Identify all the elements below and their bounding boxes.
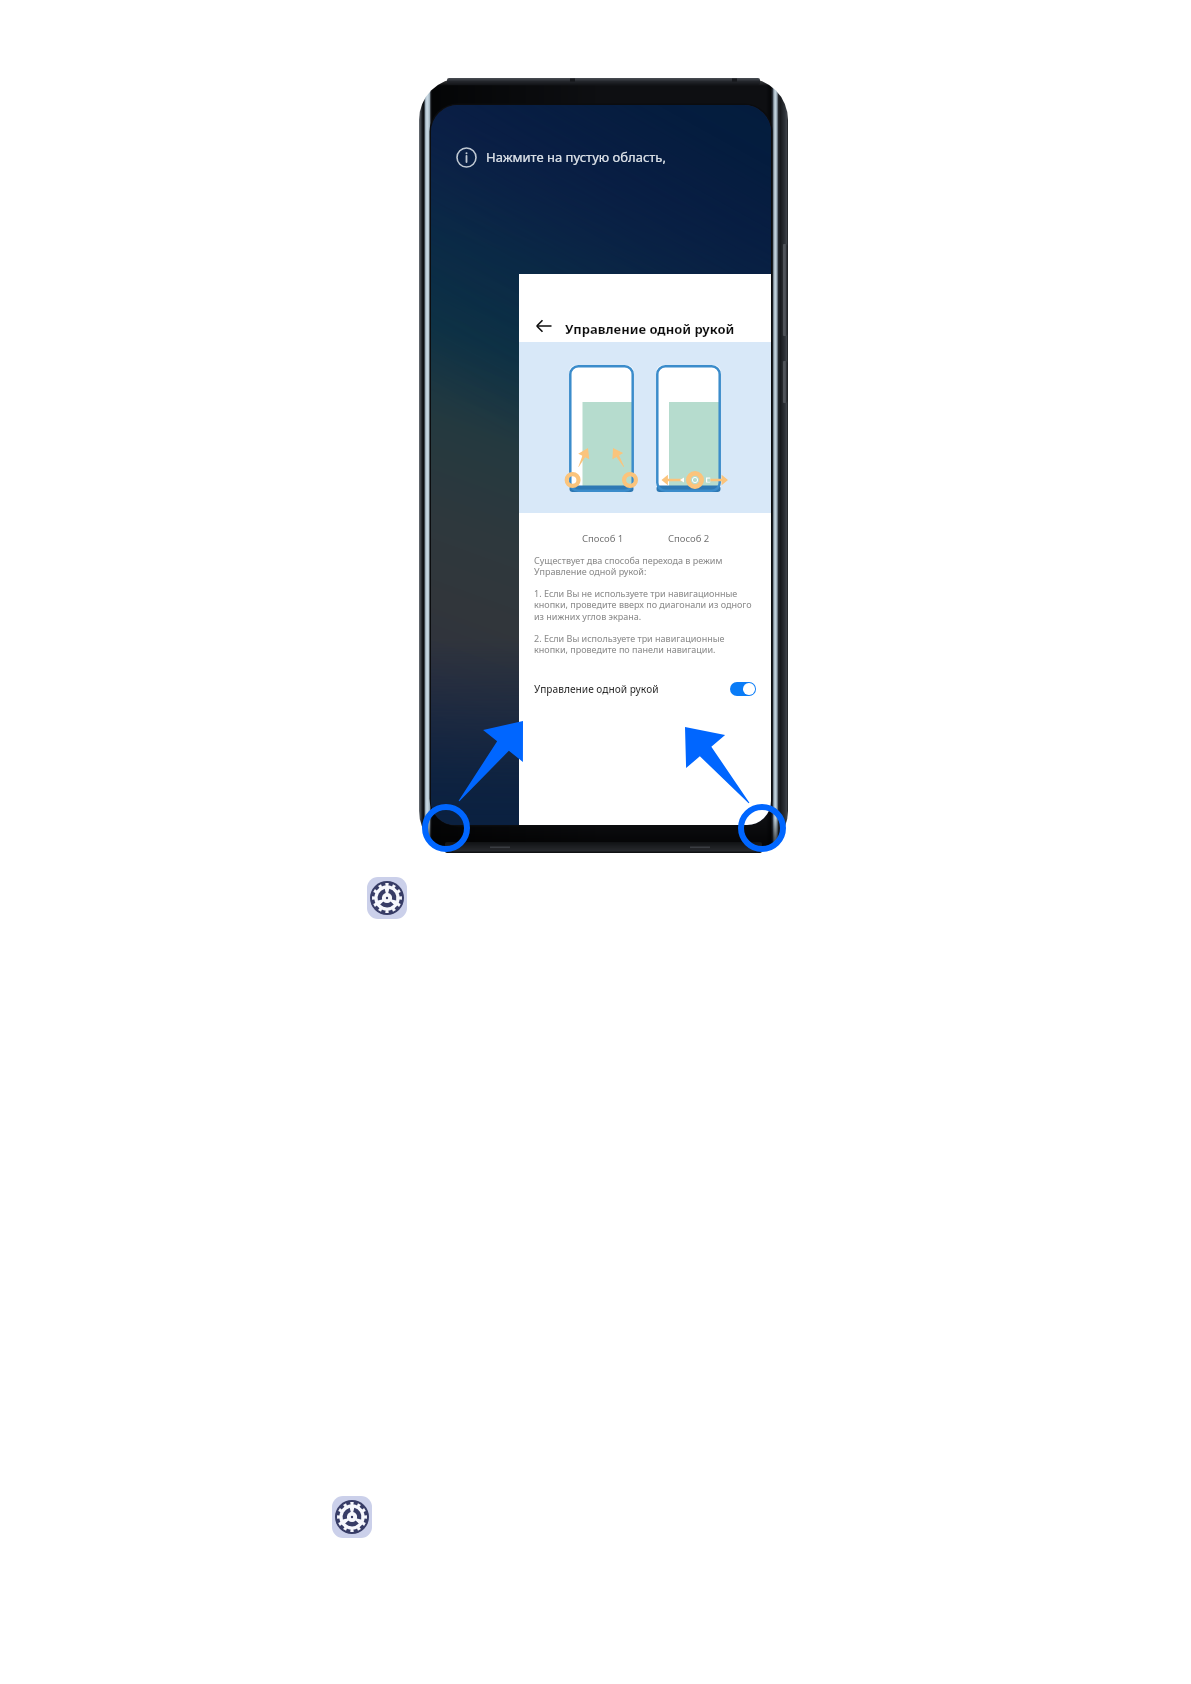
staticText: Нажмите на пустую область, — [486, 148, 666, 166]
button[interactable]: Settings — [332, 1496, 372, 1538]
button[interactable]: Information — [456, 144, 666, 170]
staticText: Способ 2 — [668, 532, 710, 545]
staticText: Существует два способа перехода в режим … — [534, 554, 723, 578]
button[interactable]: Back — [529, 311, 559, 341]
button[interactable]: One-handed mode toggle — [730, 682, 756, 696]
staticText: 2. Если Вы используете три навигационные… — [534, 632, 725, 656]
staticText: 1. Если Вы не используете три навигацион… — [534, 587, 752, 623]
button[interactable]: Settings — [367, 877, 407, 919]
button[interactable]: Управление одной рукой — [519, 674, 771, 704]
other: Information — [456, 147, 477, 168]
staticText: Управление одной рукой — [565, 320, 735, 338]
staticText: Способ 1 — [582, 532, 624, 545]
staticText: Управление одной рукой — [534, 682, 659, 696]
